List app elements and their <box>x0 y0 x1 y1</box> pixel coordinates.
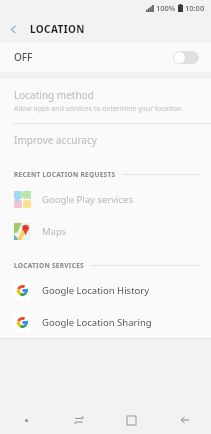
staticText: LOCATION SERVICES <box>14 261 84 270</box>
staticText: Improve accuracy <box>14 133 97 147</box>
button[interactable]: Maps <box>0 215 211 247</box>
staticText: LOCATION <box>30 22 85 36</box>
button[interactable]: Home <box>105 406 158 434</box>
button[interactable]: Back <box>158 406 211 434</box>
button[interactable]: Google Location Sharing <box>0 306 211 338</box>
staticText: 10:00 <box>185 3 205 13</box>
staticText: Google Location Sharing <box>42 316 152 329</box>
button[interactable]: Google Play services <box>0 183 211 215</box>
button[interactable]: Google Location History <box>0 274 211 306</box>
button[interactable]: OFF <box>0 42 211 72</box>
staticText: OFF <box>14 50 33 64</box>
staticText: Google Location History <box>42 284 150 297</box>
button[interactable]: Keyboard indicator <box>0 406 52 434</box>
button[interactable]: Back <box>0 16 26 42</box>
button[interactable]: Improve accuracy <box>0 124 211 156</box>
staticText: Google Play services <box>42 193 133 206</box>
staticText: Maps <box>42 225 67 238</box>
staticText: Allow apps and services to determine you… <box>14 104 184 114</box>
staticText: Locating method <box>14 88 94 102</box>
button[interactable]: Recents <box>52 406 105 434</box>
staticText: 100% <box>156 3 176 13</box>
button[interactable]: Locating method <box>0 79 211 123</box>
staticText: RECENT LOCATION REQUESTS <box>14 170 116 179</box>
